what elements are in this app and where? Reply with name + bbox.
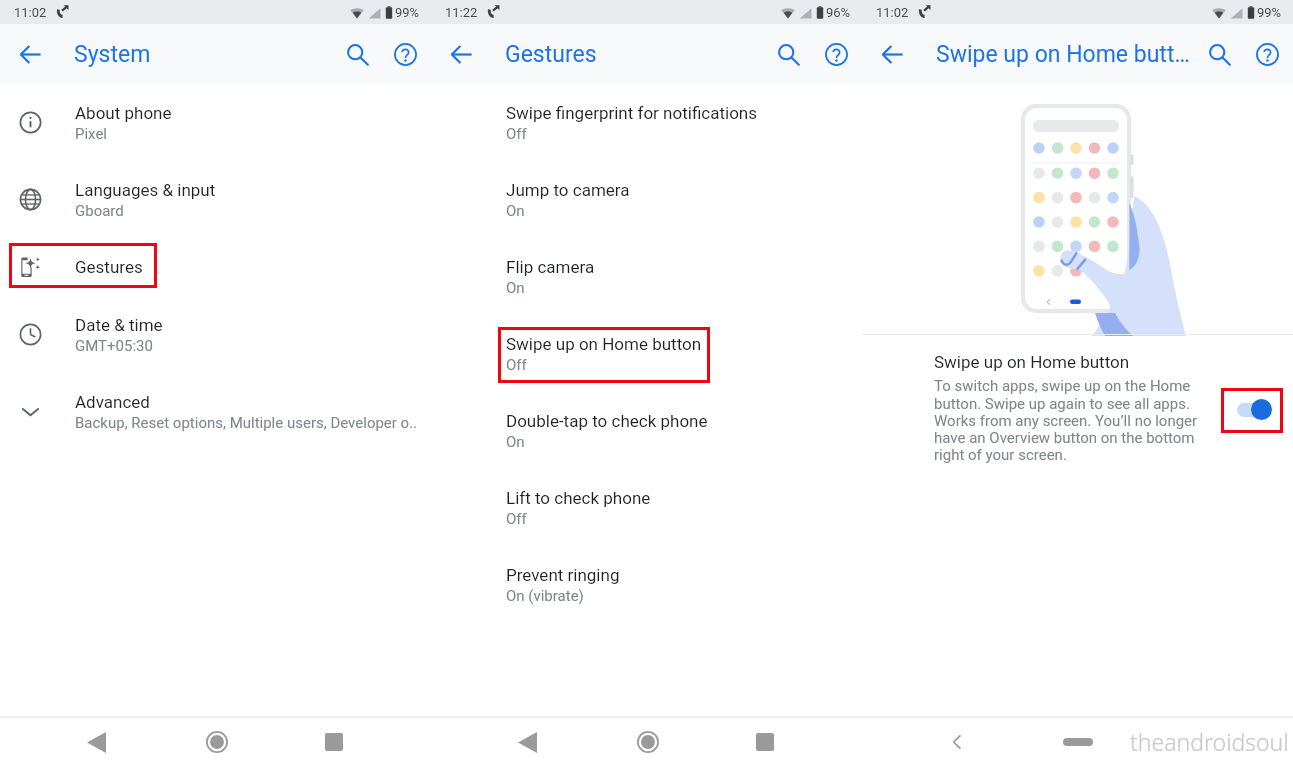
staticText: Date & time [75,315,163,335]
staticText: Prevent ringing [506,565,620,585]
button[interactable]: Home [626,720,670,764]
staticText: 99% [395,5,420,20]
staticText: theandroidsoul [1130,726,1289,757]
button[interactable]: Date & time [0,296,431,373]
button[interactable]: Lift to check phone [431,469,862,546]
staticText: Jump to camera [506,180,630,200]
staticText: Languages & input [75,180,216,200]
staticText: Gboard [75,202,124,220]
staticText: System [74,41,151,68]
button[interactable]: Gestures [0,238,431,296]
staticText: On [506,279,525,297]
button[interactable]: Flip camera [431,238,862,315]
button[interactable]: Prevent ringing [431,546,862,623]
staticText: On [506,433,525,451]
staticText: Swipe fingerprint for notifications [506,103,757,123]
staticText: Gestures [505,41,597,68]
button[interactable]: Recent apps [312,720,356,764]
button[interactable]: About phone [0,84,431,161]
button[interactable]: Search [764,30,812,78]
button[interactable]: Swipe up on Home button [431,315,862,392]
staticText: Double-tap to check phone [506,411,708,431]
staticText: Backup, Reset options, Multiple users, D… [75,414,418,432]
button[interactable]: Swipe up on Home button toggle [1221,388,1283,433]
staticText: Pixel [75,125,108,143]
staticText: 11:02 [876,5,909,20]
button[interactable]: Navigate up [8,32,52,76]
button[interactable]: Back [940,725,974,759]
staticText: Flip camera [506,257,595,277]
staticText: GMT+05:30 [75,337,153,355]
staticText: 11:02 [14,5,47,20]
staticText: Swipe up on Home button [934,352,1130,372]
staticText: Gestures [75,257,143,277]
staticText: Off [506,356,527,374]
staticText: Advanced [75,392,150,412]
staticText: About phone [75,103,172,123]
staticText: Swipe up on Home butt… [936,41,1189,68]
staticText: 99% [1257,5,1282,20]
staticText: On [506,202,525,220]
button[interactable]: Search [1195,30,1243,78]
staticText: To switch apps, swipe up on the Home but… [934,377,1215,463]
button[interactable]: Double-tap to check phone [431,392,862,469]
staticText: Swipe up on Home button [506,334,702,354]
button[interactable]: Help [812,30,860,78]
button[interactable]: Back [74,720,118,764]
button[interactable]: Advanced [0,373,431,450]
button[interactable]: Languages & input [0,161,431,238]
staticText: On (vibrate) [506,587,584,605]
staticText: 11:22 [445,5,478,20]
button[interactable]: Navigate up [439,32,483,76]
staticText: Lift to check phone [506,488,651,508]
button[interactable]: Help [381,30,429,78]
staticText: Off [506,510,527,528]
button[interactable]: Home [1056,727,1100,757]
staticText: 96% [826,5,851,20]
staticText: Off [506,125,527,143]
button[interactable]: Search [333,30,381,78]
button[interactable]: Navigate up [870,32,914,76]
button[interactable]: Help [1243,30,1291,78]
button[interactable]: Home [195,720,239,764]
button[interactable]: Jump to camera [431,161,862,238]
button[interactable]: Swipe fingerprint for notifications [431,84,862,161]
button[interactable]: Back [505,720,549,764]
button[interactable]: Recent apps [743,720,787,764]
